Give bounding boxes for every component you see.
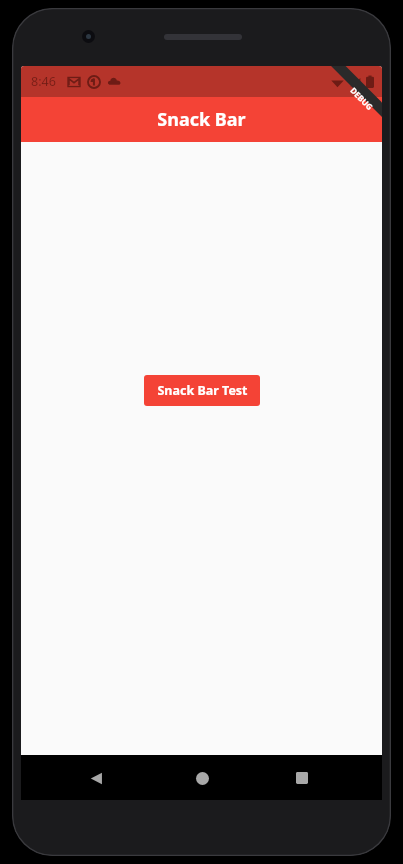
staticText: 8:46 (31, 73, 56, 90)
staticText: DEBUG (348, 85, 376, 112)
button[interactable]: Snack Bar Test (144, 375, 260, 406)
button[interactable]: Home (184, 760, 220, 796)
button[interactable]: Recent apps (284, 760, 320, 796)
staticText: Snack Bar (157, 107, 246, 132)
staticText: Snack Bar Test (157, 382, 248, 399)
button[interactable]: Back (78, 760, 114, 796)
